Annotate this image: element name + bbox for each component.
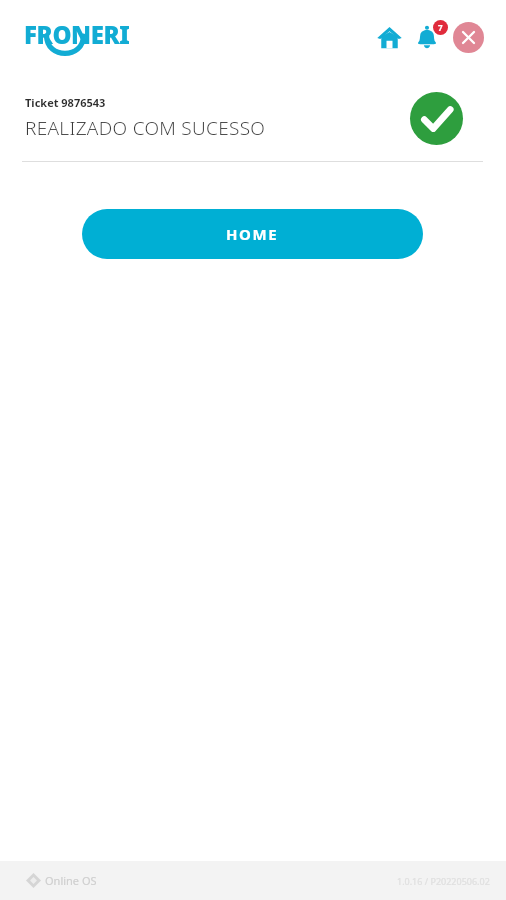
button[interactable]: Notifications, 7 new: [410, 18, 448, 56]
staticText: Online OS: [45, 873, 97, 888]
staticText: 1.0.16 / P20220506.02: [397, 875, 490, 887]
button[interactable]: Close: [453, 22, 484, 53]
staticText: HOME: [226, 224, 279, 244]
button[interactable]: HOME: [82, 209, 423, 259]
staticText: Ticket 9876543: [25, 95, 106, 110]
button[interactable]: Home: [370, 18, 408, 56]
staticText: 7: [438, 22, 443, 33]
staticText: FRONERI: [24, 18, 130, 51]
staticText: REALIZADO COM SUCESSO: [25, 115, 266, 141]
